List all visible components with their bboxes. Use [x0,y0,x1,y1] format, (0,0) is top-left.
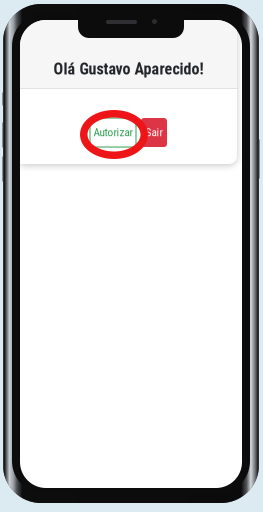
staticText: Autorizar [93,126,132,139]
staticText: Sair [145,126,162,139]
button[interactable]: Sair [141,118,167,147]
button[interactable]: Autorizar [90,118,136,147]
staticText: Olá Gustavo Aparecido! [53,60,203,78]
